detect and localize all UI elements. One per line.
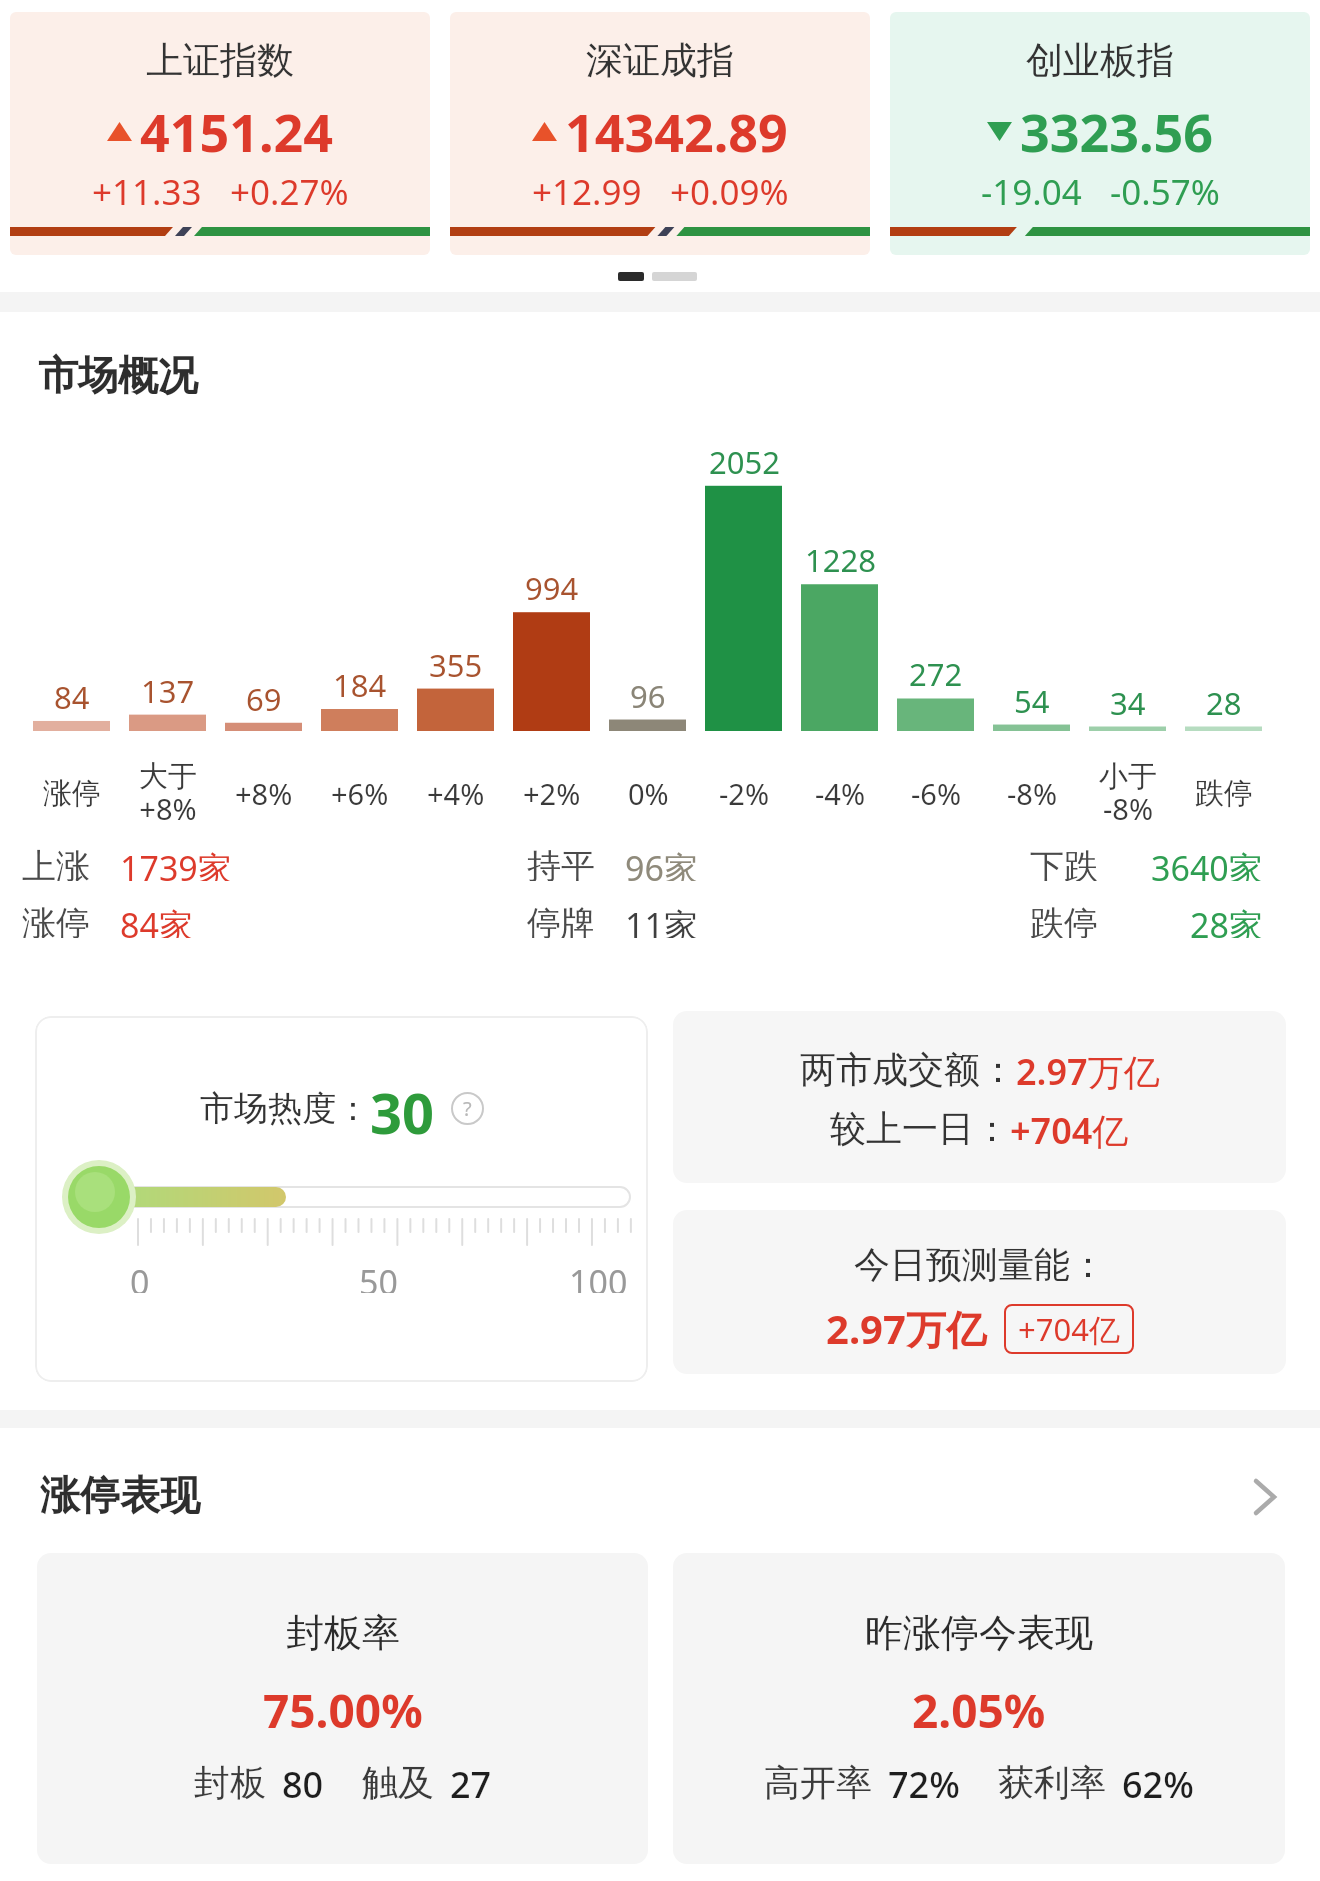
staticText: 69	[246, 678, 282, 718]
staticText: 2.05%	[912, 1679, 1046, 1742]
staticText: 80	[282, 1760, 324, 1809]
staticText: 封板率	[286, 1609, 400, 1657]
staticText: 54	[1014, 680, 1050, 720]
staticText: 涨停表现	[40, 1470, 200, 1520]
button[interactable]: 涨停表现	[0, 1455, 1320, 1535]
staticText: 14342.89	[565, 96, 788, 167]
staticText: 0	[130, 1259, 150, 1293]
button[interactable]: 昨涨停今表现	[673, 1553, 1285, 1864]
staticText: 96	[630, 675, 666, 715]
staticText: -8%	[1007, 774, 1058, 813]
staticText: 994	[525, 567, 579, 607]
staticText: 2.97万亿	[826, 1301, 986, 1356]
staticText: +704亿	[1010, 1106, 1129, 1155]
staticText: -4%	[815, 774, 866, 813]
staticText: 跌停	[1030, 902, 1098, 938]
staticText: 上涨	[22, 845, 90, 881]
staticText: 3640家	[1151, 845, 1263, 881]
staticText: 50	[359, 1259, 398, 1293]
staticText: +0.27%	[230, 168, 349, 214]
staticText: 27	[450, 1760, 492, 1809]
staticText: 84家	[120, 902, 193, 938]
staticText: +704亿	[1018, 1308, 1120, 1350]
staticText: 持平	[527, 845, 595, 881]
staticText: 28家	[1190, 902, 1263, 938]
staticText: 28	[1206, 682, 1242, 722]
staticText: -6%	[911, 774, 962, 813]
staticText: 2052	[709, 441, 780, 481]
staticText: 1228	[805, 539, 876, 579]
staticText: 市场热度：	[200, 1087, 370, 1130]
staticText: +12.99	[532, 168, 642, 214]
button[interactable]: 市场热度：	[35, 1016, 648, 1382]
button[interactable]: 封板率	[37, 1553, 648, 1864]
staticText: 272	[909, 653, 963, 693]
staticText: 1739家	[120, 845, 232, 881]
button[interactable]: 今日预测量能：	[673, 1210, 1286, 1374]
staticText: 75.00%	[263, 1679, 423, 1742]
staticText: -0.57%	[1110, 168, 1220, 214]
staticText: 大于 +8%	[139, 758, 197, 828]
staticText: -2%	[719, 774, 770, 813]
staticText: 3323.56	[1020, 96, 1214, 167]
staticText: 高开率	[764, 1760, 872, 1805]
staticText: +2%	[523, 774, 581, 813]
staticText: 137	[141, 670, 195, 710]
staticText: 创业板指	[1026, 37, 1174, 84]
staticText: 涨停	[22, 902, 90, 938]
button[interactable]: 两市成交额：	[673, 1011, 1286, 1183]
staticText: 停牌	[527, 902, 595, 938]
staticText: +11.33	[92, 168, 202, 214]
staticText: 4151.24	[140, 96, 334, 167]
staticText: 昨涨停今表现	[865, 1609, 1093, 1657]
staticText: 涨停	[43, 775, 101, 812]
staticText: 小于 -8%	[1099, 758, 1157, 828]
staticText: 62%	[1122, 1760, 1194, 1809]
staticText: 较上一日：	[830, 1106, 1010, 1151]
staticText: 30	[370, 1074, 435, 1142]
staticText: ?	[463, 1095, 472, 1122]
staticText: 跌停	[1195, 775, 1253, 812]
staticText: 96家	[625, 845, 698, 881]
staticText: 下跌	[1030, 845, 1098, 881]
staticText: 0%	[628, 774, 669, 813]
staticText: 100	[569, 1259, 628, 1293]
staticText: 今日预测量能：	[854, 1242, 1106, 1287]
staticText: 上证指数	[146, 37, 294, 84]
staticText: 355	[429, 644, 483, 684]
button[interactable]: 上证指数	[10, 12, 430, 255]
staticText: 11家	[625, 902, 698, 938]
button[interactable]: 创业板指	[890, 12, 1310, 255]
staticText: +6%	[331, 774, 389, 813]
staticText: 34	[1110, 682, 1146, 722]
staticText: 84	[54, 676, 90, 716]
staticText: 触及	[362, 1760, 434, 1805]
staticText: +4%	[427, 774, 485, 813]
staticText: 深证成指	[586, 37, 734, 84]
button[interactable]: 深证成指	[450, 12, 870, 255]
staticText: -19.04	[981, 168, 1082, 214]
staticText: 封板	[194, 1760, 266, 1805]
staticText: 两市成交额：	[800, 1047, 1016, 1092]
staticText: +8%	[235, 774, 293, 813]
staticText: +0.09%	[670, 168, 789, 214]
staticText: 2.97万亿	[1016, 1047, 1160, 1096]
staticText: 市场概况	[38, 350, 198, 400]
staticText: 72%	[888, 1760, 960, 1809]
staticText: 获利率	[998, 1760, 1106, 1805]
staticText: 184	[333, 664, 387, 704]
